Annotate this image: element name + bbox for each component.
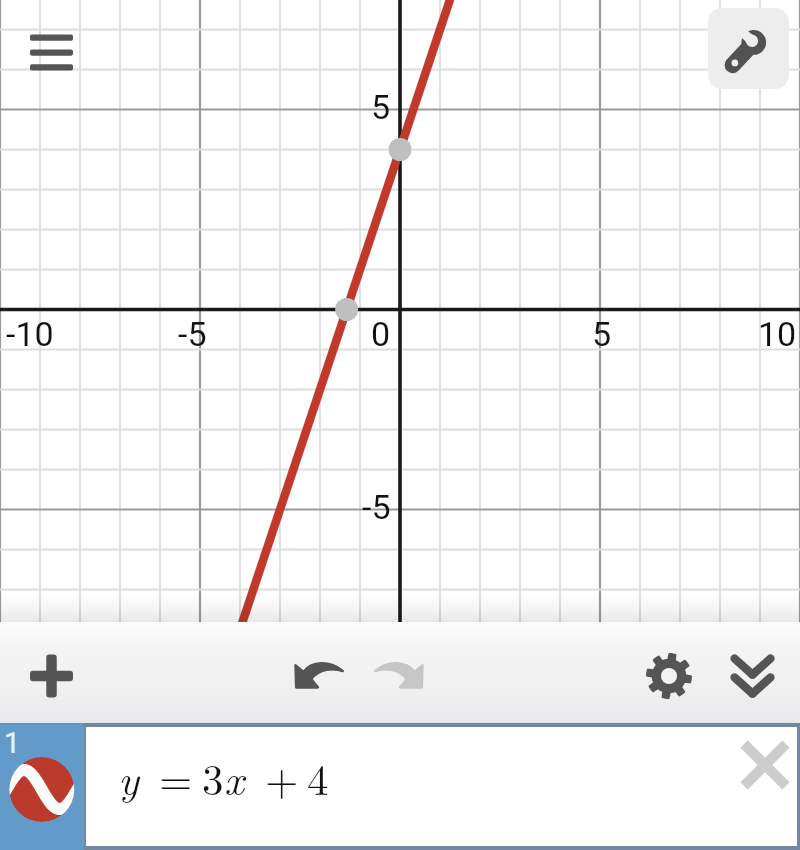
staticText: -5 (178, 314, 207, 354)
staticText: 1 (4, 726, 21, 760)
staticText: 3 (202, 747, 224, 808)
staticText: 0 (371, 314, 391, 354)
staticText: -10 (6, 314, 54, 354)
staticText: 10 (758, 314, 797, 354)
button[interactable]: Redo (367, 642, 431, 706)
staticText: 4 (307, 747, 329, 808)
button[interactable]: y (86, 727, 797, 846)
staticText: = (159, 747, 193, 808)
staticText: x (224, 747, 244, 808)
staticText: 5 (371, 87, 391, 127)
staticText: y (118, 747, 139, 808)
button[interactable]: Delete (741, 741, 789, 789)
button[interactable]: Undo (287, 642, 351, 706)
button[interactable]: Settings (646, 653, 692, 699)
button[interactable]: Menu (18, 22, 84, 88)
staticText: -5 (362, 487, 391, 527)
staticText: + (265, 747, 299, 808)
button[interactable]: 1 (0, 724, 84, 850)
button[interactable]: Add (19, 644, 84, 709)
button[interactable]: Tools (708, 8, 789, 89)
button[interactable]: Collapse (730, 654, 775, 699)
staticText: 5 (592, 314, 612, 354)
